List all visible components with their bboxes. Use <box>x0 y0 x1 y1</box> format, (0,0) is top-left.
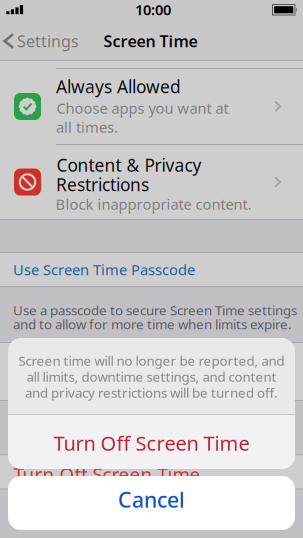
staticText: Screen Time <box>103 30 197 52</box>
staticText: Use a passcode to secure Screen Time set… <box>13 301 297 319</box>
staticText: Content & Privacy <box>56 153 201 176</box>
button[interactable]: Always Allowed <box>0 69 303 144</box>
staticText: Use Screen Time Passcode <box>13 260 195 279</box>
staticText: all times. <box>56 117 118 137</box>
staticText: 10:00 <box>135 0 171 19</box>
button[interactable]: Turn Off Screen Time <box>8 415 295 469</box>
staticText: Choose apps you want at <box>56 98 228 118</box>
button[interactable]: Use Screen Time Passcode <box>0 253 303 286</box>
staticText: Screen time will no longer be reported, … <box>18 352 284 369</box>
staticText: all limits, downtime settings, and conte… <box>26 368 276 385</box>
button[interactable]: Back to Settings <box>0 20 80 60</box>
button[interactable]: Content & Privacy <box>0 145 303 219</box>
button[interactable]: Turn Off Screen Time <box>0 455 303 488</box>
staticText: Always Allowed <box>56 75 181 98</box>
staticText: Restrictions <box>56 173 149 196</box>
staticText: Settings <box>17 30 79 52</box>
staticText: and privacy restrictions will be turned … <box>25 384 278 401</box>
staticText: and to allow for more time when limits e… <box>13 315 292 333</box>
staticText: Block inappropriate content. <box>55 194 251 214</box>
staticText: Turn Off Screen Time <box>13 462 200 486</box>
staticText: Cancel <box>118 485 185 514</box>
staticText: Turn Off Screen Time <box>53 430 249 456</box>
button[interactable]: Cancel <box>8 476 295 530</box>
